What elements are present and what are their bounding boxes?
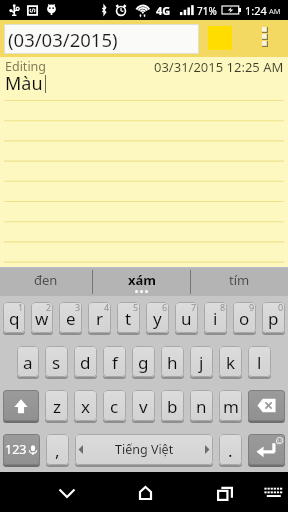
button[interactable]: (03/03/2015) [4, 24, 199, 54]
staticText: 7 [191, 302, 197, 313]
button[interactable]: c [103, 390, 126, 422]
staticText: j [199, 351, 204, 374]
button[interactable]: e [59, 302, 82, 334]
staticText: 71% [197, 4, 217, 18]
button[interactable]: m [219, 390, 242, 422]
staticText: t [125, 307, 132, 330]
button[interactable]: , [46, 434, 69, 466]
button[interactable]: Recent apps [202, 472, 248, 512]
staticText: w [35, 307, 49, 330]
staticText: 03/31/2015 12:25 AM [154, 58, 284, 76]
staticText: q [9, 307, 20, 330]
button[interactable]: i [204, 302, 227, 334]
staticText: 3 [75, 302, 81, 313]
button[interactable]: z [45, 390, 68, 422]
staticText: p [268, 307, 279, 330]
staticText: g [138, 351, 149, 374]
button[interactable]: o [233, 302, 256, 334]
button[interactable]: y [146, 302, 169, 334]
button[interactable]: w [31, 302, 53, 334]
button[interactable]: Hide keyboard [44, 472, 90, 512]
staticText: 8 [220, 302, 226, 313]
staticText: 9 [249, 302, 255, 313]
staticText: u [181, 307, 192, 330]
staticText: 4 [104, 302, 110, 313]
button[interactable]: r [88, 302, 111, 334]
staticText: , [55, 439, 60, 462]
button[interactable]: Symbols and voice input [3, 434, 40, 466]
button[interactable]: q [3, 302, 25, 334]
button[interactable]: b [161, 390, 184, 422]
button[interactable]: Shift [3, 390, 39, 422]
button[interactable]: k [219, 346, 242, 378]
staticText: Editing [5, 58, 47, 75]
staticText: a [23, 351, 33, 374]
button[interactable]: n [190, 390, 213, 422]
button[interactable]: d [74, 346, 97, 378]
button[interactable]: . [219, 434, 242, 466]
staticText: h [167, 351, 178, 374]
staticText: AM [269, 6, 281, 16]
staticText: 1:24 [245, 3, 267, 18]
button[interactable]: đen [0, 267, 92, 296]
button[interactable]: More options [252, 20, 282, 57]
staticText: i [213, 307, 218, 330]
button[interactable]: x [74, 390, 97, 422]
staticText: . [228, 439, 233, 462]
staticText: đen [34, 271, 58, 289]
staticText: xám [128, 271, 156, 289]
button[interactable]: Backspace [248, 390, 285, 422]
staticText: e [66, 307, 76, 330]
button[interactable]: Tiếng Việt [75, 434, 213, 466]
staticText: 0 [278, 302, 284, 313]
button[interactable]: g [132, 346, 155, 378]
button[interactable]: xám [93, 267, 190, 296]
button[interactable]: l [248, 346, 271, 378]
button[interactable]: u [175, 302, 198, 334]
button[interactable]: j [190, 346, 213, 378]
button[interactable]: v [132, 390, 155, 422]
staticText: tím [229, 271, 250, 289]
button[interactable]: s [45, 346, 68, 378]
button[interactable]: Switch keyboard [258, 472, 288, 512]
staticText: 2 [46, 302, 52, 313]
staticText: f [112, 351, 118, 374]
staticText: v [139, 395, 148, 418]
staticText: 5 [133, 302, 139, 313]
button[interactable]: a [17, 346, 39, 378]
staticText: 4G [156, 3, 171, 18]
staticText: s [52, 351, 61, 374]
staticText: n [196, 395, 207, 418]
staticText: z [53, 395, 61, 418]
staticText: k [226, 351, 236, 374]
staticText: c [110, 395, 119, 418]
staticText: l [257, 351, 262, 374]
staticText: y [153, 307, 162, 330]
button[interactable]: f [103, 346, 126, 378]
staticText: m [223, 395, 239, 418]
staticText: r [96, 307, 104, 330]
button[interactable]: p [262, 302, 285, 334]
staticText: Màu [5, 71, 43, 96]
staticText: (03/03/2015) [8, 27, 118, 52]
button[interactable]: h [161, 346, 184, 378]
staticText: 6 [162, 302, 168, 313]
staticText: b [167, 395, 178, 418]
button[interactable]: tím [191, 267, 288, 296]
staticText: 123 [5, 441, 27, 458]
staticText: 1 [18, 302, 24, 313]
staticText: Tiếng Việt [115, 441, 174, 458]
button[interactable]: Enter [248, 434, 285, 466]
staticText: o [239, 307, 250, 330]
staticText: x [81, 395, 90, 418]
button[interactable]: Home [122, 472, 168, 512]
button[interactable]: t [117, 302, 140, 334]
staticText: d [80, 351, 91, 374]
